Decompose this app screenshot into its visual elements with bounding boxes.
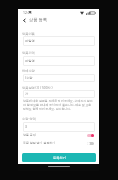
staticText: /수량 xyxy=(25,76,33,80)
staticText: 상품설명 ( 0 / 500자 ) xyxy=(22,86,53,90)
staticText: 가 xyxy=(25,92,29,96)
staticText: 등록하기 xyxy=(53,156,66,160)
staticText: 파일명 xyxy=(25,39,35,43)
staticText: 상품이름 xyxy=(22,32,35,36)
staticText: 파일명 xyxy=(25,59,35,63)
staticText: 판매수량 xyxy=(22,69,35,73)
staticText: 주문 알림 받기 설정하기 xyxy=(23,141,56,145)
button[interactable]: 상품 공개 xyxy=(23,132,94,138)
staticText: 3 xyxy=(25,125,27,129)
button[interactable]: 주문 알림 받기 설정하기 xyxy=(23,140,94,146)
button[interactable]: 등록하기 xyxy=(22,153,96,162)
staticText: 상품가격 xyxy=(22,51,35,55)
staticText: 12:08 xyxy=(23,10,32,15)
staticText: 수량 선택 xyxy=(22,117,36,121)
staticText: 상품에 대한 설명을 자세히 적어 주세요. 구매자가 알아야 할 정보를 안내… xyxy=(23,99,94,111)
staticText: 상품 등록 xyxy=(29,17,47,23)
staticText: 상품 공개 xyxy=(23,133,36,137)
button[interactable]: Back xyxy=(19,15,29,25)
